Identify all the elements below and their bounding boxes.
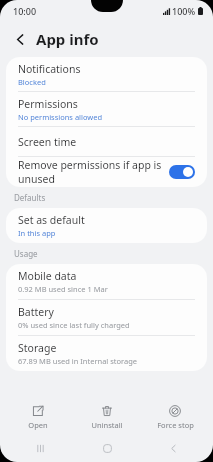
staticText: Open [28,420,48,430]
staticText: Screen time [18,135,77,149]
button[interactable]: Permissions [6,92,207,126]
button[interactable]: Open [7,403,69,432]
button[interactable]: Back [147,437,199,459]
staticText: Remove permissions if app is unused [18,158,169,186]
staticText: Force stop [157,420,194,430]
button[interactable]: Screen time [6,127,207,156]
button[interactable]: Uninstall [76,403,138,432]
button[interactable]: Back [9,28,31,50]
staticText: 67.89 MB used in Internal storage [18,356,138,366]
staticText: Battery [18,305,54,319]
staticText: Storage [18,341,57,355]
staticText: 0.92 MB used since 1 Mar [18,284,108,294]
staticText: App info [36,29,99,49]
button[interactable]: Home [81,437,133,459]
staticText: Set as default [18,213,85,227]
staticText: Permissions [18,97,78,111]
staticText: Notifications [18,62,81,76]
staticText: 10:00 [13,5,37,17]
staticText: 0% used since last fully charged [18,320,130,330]
button[interactable]: Notifications [6,57,207,91]
staticText: Defaults [14,192,46,203]
button[interactable]: Force stop [144,403,206,432]
staticText: 100% [172,5,196,17]
staticText: No permissions allowed [18,112,103,122]
staticText: Mobile data [18,269,77,283]
button[interactable]: Remove permissions if app is unused [6,157,207,187]
staticText: Uninstall [91,420,123,430]
button[interactable]: Recents [14,437,66,459]
button[interactable]: Storage [6,336,207,371]
button[interactable]: Remove permissions toggle [169,165,195,179]
button[interactable]: Battery [6,300,207,335]
button[interactable]: Mobile data [6,264,207,299]
button[interactable]: Set as default [6,208,207,243]
staticText: Blocked [18,77,46,87]
staticText: In this app [18,228,56,238]
staticText: Usage [14,248,38,259]
